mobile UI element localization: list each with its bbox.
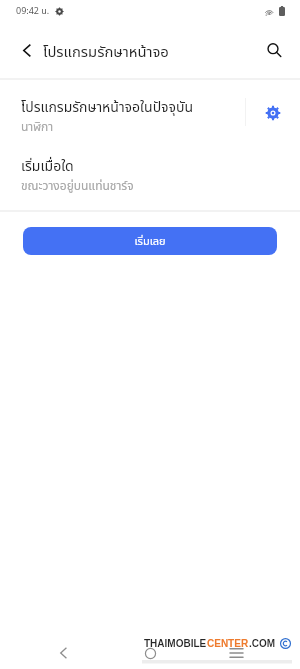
staticText: นาฬิกา — [21, 118, 54, 136]
staticText: .COM — [249, 638, 276, 649]
button[interactable]: Back — [0, 22, 54, 78]
staticText: ขณะวางอยู่บนแท่นชาร์จ — [21, 177, 134, 195]
staticText: 09:42 น. — [16, 4, 50, 18]
button[interactable]: Home — [132, 637, 168, 669]
staticText: โปรแกรมรักษาหน้าจอในปัจจุบัน — [21, 97, 194, 118]
button[interactable]: Screen saver settings — [246, 80, 300, 144]
staticText: โปรแกรมรักษาหน้าจอ — [43, 41, 169, 63]
button[interactable]: เริ่มเลย — [23, 227, 277, 255]
button[interactable]: เริ่มเมื่อใด — [0, 144, 300, 210]
staticText: เริ่มเมื่อใด — [21, 156, 74, 177]
button[interactable]: Back — [45, 637, 81, 669]
button[interactable]: โปรแกรมรักษาหน้าจอในปัจจุบัน — [0, 80, 300, 144]
button[interactable]: Recent apps — [218, 637, 254, 669]
staticText: THAIMOBILE — [144, 638, 207, 649]
staticText: CENTER — [207, 638, 249, 649]
button[interactable]: Search — [248, 23, 300, 77]
staticText: เริ่มเลย — [134, 233, 166, 250]
